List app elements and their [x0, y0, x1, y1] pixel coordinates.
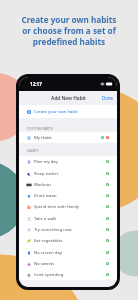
staticText: Create your own habits or choose from a …: [0, 14, 138, 47]
staticText: CUSTOM HABITS: [27, 126, 53, 130]
button[interactable]: Done: [101, 94, 115, 102]
staticText: Workout: [34, 182, 51, 188]
staticText: Drink water: [34, 193, 58, 199]
button[interactable]: Sleep earlier: [19, 168, 117, 179]
button[interactable]: Plan my day: [19, 156, 117, 167]
button[interactable]: Drink water: [19, 190, 117, 201]
button[interactable]: Spend time with family: [19, 201, 117, 212]
staticText: Eat vegetables: [34, 238, 63, 244]
button[interactable]: No sweets: [19, 258, 117, 269]
staticText: No screen day: [34, 250, 62, 256]
button[interactable]: My Habit: [19, 132, 117, 143]
staticText: No sweets: [34, 261, 55, 267]
staticText: Create your own habit: [34, 109, 78, 115]
staticText: HABITS: [27, 148, 39, 152]
staticText: Done: [102, 95, 114, 101]
button[interactable]: Create your own habit: [19, 105, 117, 118]
button[interactable]: No screen day: [19, 247, 117, 258]
button[interactable]: Take a walk: [19, 213, 117, 224]
staticText: Try something new: [34, 227, 72, 233]
button[interactable]: Limit spending: [19, 269, 117, 280]
staticText: My Habit: [34, 135, 52, 141]
button[interactable]: Eat vegetables: [19, 235, 117, 246]
staticText: Add New Habit: [51, 95, 86, 102]
staticText: Take a walk: [34, 216, 57, 222]
staticText: Limit spending: [34, 272, 64, 278]
button[interactable]: Try something new: [19, 224, 117, 235]
staticText: 12:17: [30, 81, 42, 87]
staticText: Sleep earlier: [34, 171, 59, 177]
button[interactable]: Workout: [19, 179, 117, 190]
staticText: Spend time with family: [34, 204, 80, 210]
staticText: Plan my day: [34, 159, 58, 165]
